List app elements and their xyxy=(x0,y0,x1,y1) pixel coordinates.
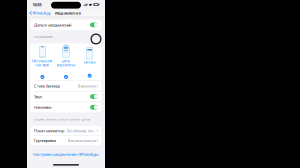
staticText: уведомлений xyxy=(56,63,75,67)
staticText: WhatsApp xyxy=(32,10,50,16)
staticText: Наклейки xyxy=(34,105,51,110)
button[interactable]: Заблокирован- xyxy=(31,47,54,80)
staticText: Заблокирован- xyxy=(31,59,53,63)
button[interactable]: Показ миниатюр xyxy=(31,126,101,135)
staticText: Центр xyxy=(62,59,70,63)
button[interactable]: Центр xyxy=(54,47,78,80)
button[interactable]: Группировка xyxy=(31,136,101,145)
staticText: ОПОВЕЩЕНИЯ xyxy=(34,35,53,39)
staticText: Настройки уведомлений «WhatsApp» xyxy=(33,151,99,157)
button[interactable]: Настройки уведомлений «WhatsApp» xyxy=(27,151,105,157)
button[interactable]: Допуск уведомлений xyxy=(31,19,101,30)
button[interactable]: Звук xyxy=(31,91,101,102)
staticText: Показ миниатюр xyxy=(34,128,64,133)
button[interactable]: Стиль баннера xyxy=(31,81,101,91)
staticText: Баннеры xyxy=(84,61,96,64)
staticText: 10:55 xyxy=(33,2,42,7)
button[interactable]: WhatsApp xyxy=(27,9,50,17)
staticText: Без блокир. (по… xyxy=(67,128,96,133)
staticText: Группировка xyxy=(34,138,56,143)
button[interactable]: Наклейки xyxy=(31,102,101,112)
staticText: Уведомления xyxy=(54,10,80,16)
staticText: Временно xyxy=(78,83,96,89)
staticText: Звук xyxy=(34,94,42,99)
staticText: Стиль баннера xyxy=(34,83,60,89)
staticText: ОПЦИИ ЭКРАНА БЛОКИРОВКИ И ЦЕНТРА xyxy=(34,118,90,121)
staticText: Допуск уведомлений xyxy=(34,22,71,27)
staticText: ный экран xyxy=(35,63,49,67)
button[interactable]: Баннеры xyxy=(78,47,101,80)
staticText: Автоматически xyxy=(68,138,96,143)
